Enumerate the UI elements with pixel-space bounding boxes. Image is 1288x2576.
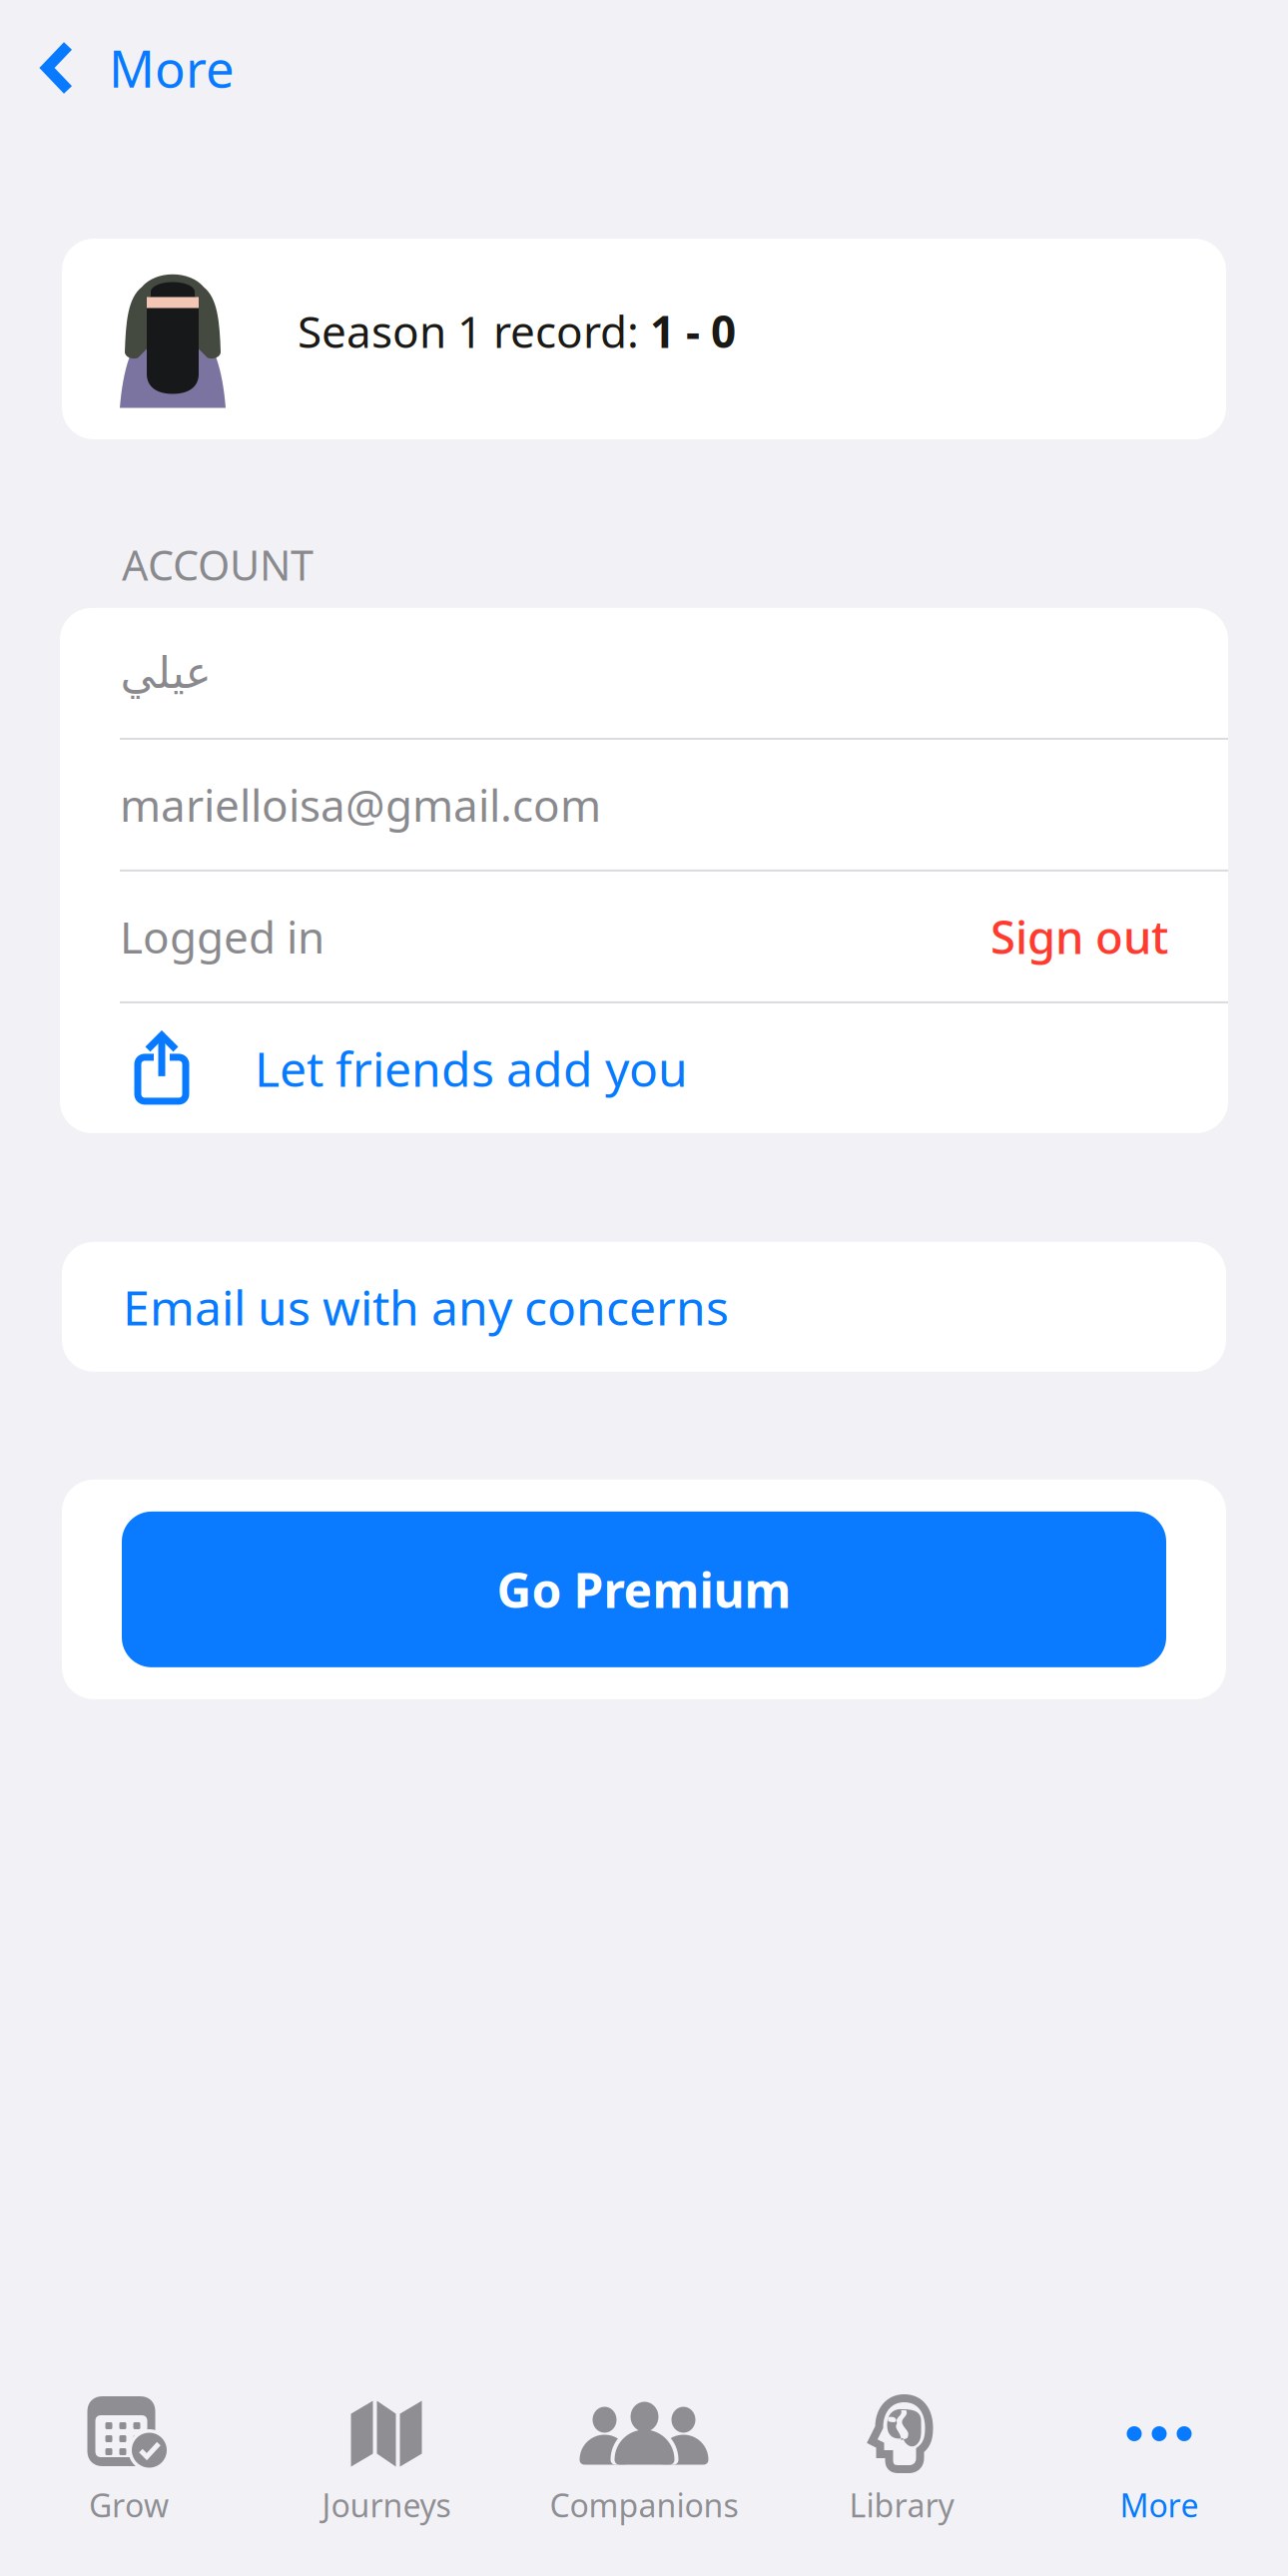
button[interactable]: Journeys <box>258 2357 515 2534</box>
button[interactable]: Let friends add you <box>60 1003 1228 1133</box>
staticText: ACCOUNT <box>122 537 314 592</box>
staticText: Logged in <box>120 907 324 966</box>
staticText: عيلي <box>120 648 211 698</box>
staticText: Season 1 record: 1 - 0 <box>298 302 736 360</box>
staticText: Journeys <box>322 2484 451 2526</box>
staticText: Let friends add you <box>255 1036 688 1100</box>
staticText: Grow <box>89 2484 169 2526</box>
button[interactable]: Companions <box>515 2357 773 2534</box>
staticText: Go Premium <box>497 1558 791 1621</box>
staticText: More <box>109 34 235 102</box>
button[interactable]: Email us with any concerns <box>62 1242 1226 1372</box>
button[interactable]: Logged in <box>60 872 1228 1001</box>
staticText: More <box>1120 2484 1199 2526</box>
staticText: Library <box>849 2484 954 2526</box>
button[interactable]: Library <box>773 2357 1030 2534</box>
staticText: marielloisa@gmail.com <box>120 775 601 834</box>
staticText: Sign out <box>990 906 1168 966</box>
staticText: Companions <box>550 2484 738 2526</box>
staticText: Email us with any concerns <box>123 1275 729 1339</box>
button[interactable]: Grow <box>0 2357 258 2534</box>
button[interactable]: More <box>1030 2357 1288 2534</box>
button[interactable]: Go Premium <box>122 1512 1166 1667</box>
button[interactable]: More <box>0 30 259 106</box>
